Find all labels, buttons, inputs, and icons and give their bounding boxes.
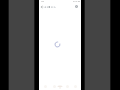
button[interactable]: Home — [57, 85, 63, 89]
other: Loading — [55, 42, 60, 47]
button[interactable]: Account — [75, 5, 78, 8]
button[interactable]: Back — [40, 5, 44, 9]
button[interactable]: Address bar — [44, 5, 57, 9]
